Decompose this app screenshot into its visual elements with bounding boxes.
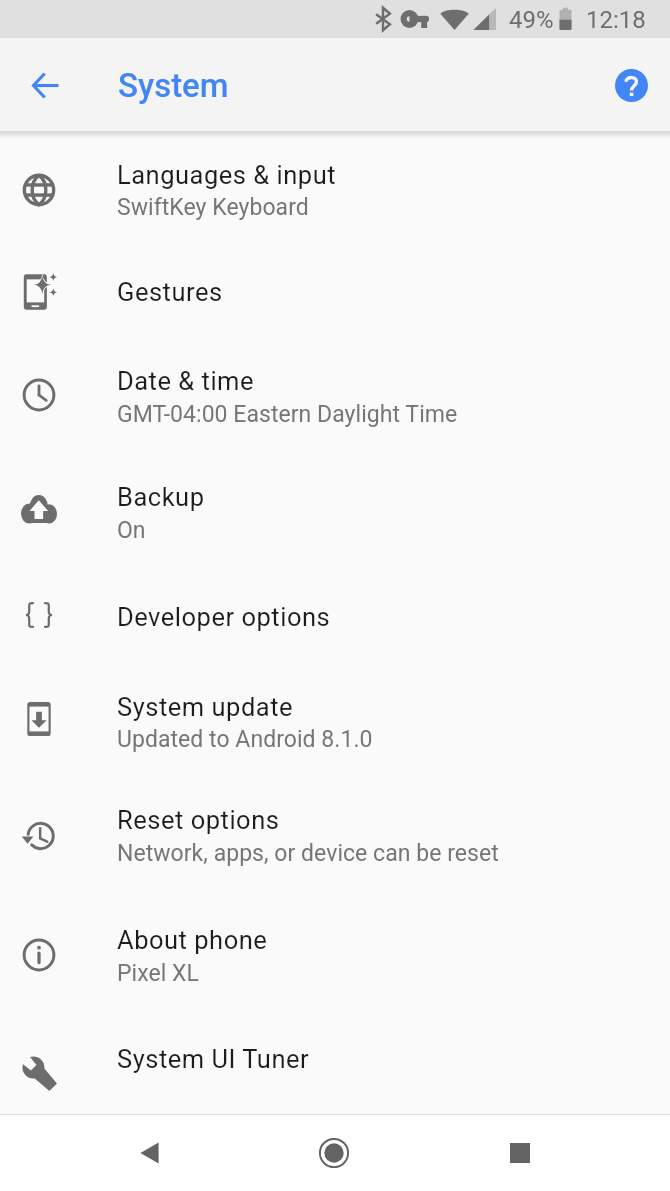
staticText: On — [117, 517, 146, 544]
button[interactable]: Recent apps — [490, 1123, 550, 1183]
button[interactable]: Reset options — [0, 779, 670, 895]
button[interactable]: System update — [0, 667, 670, 779]
staticText: System update — [117, 692, 294, 722]
staticText: System — [118, 66, 229, 105]
staticText: Developer options — [117, 602, 331, 632]
button[interactable]: Navigate up — [21, 61, 69, 109]
staticText: Reset options — [117, 805, 280, 835]
staticText: SwiftKey Keyboard — [117, 194, 309, 221]
staticText: Pixel XL — [117, 960, 199, 987]
staticText: 12:18 — [586, 6, 646, 34]
staticText: Languages & input — [117, 160, 337, 190]
staticText: Backup — [117, 482, 205, 512]
button[interactable]: System UI Tuner — [0, 1012, 670, 1114]
staticText: 49% — [509, 6, 554, 34]
staticText: About phone — [117, 925, 268, 955]
button[interactable]: Gestures — [0, 243, 670, 342]
button[interactable]: Developer options — [0, 568, 670, 667]
staticText: Updated to Android 8.1.0 — [117, 726, 373, 753]
button[interactable]: Languages & input — [0, 131, 670, 243]
button[interactable]: Help — [609, 63, 653, 107]
staticText: System UI Tuner — [117, 1044, 310, 1074]
button[interactable]: Home — [304, 1123, 364, 1183]
staticText: Date & time — [117, 366, 255, 396]
button[interactable]: About phone — [0, 895, 670, 1012]
staticText: GMT-04:00 Eastern Daylight Time — [117, 401, 458, 428]
button[interactable]: Backup — [0, 454, 670, 568]
button[interactable]: Back — [119, 1123, 179, 1183]
button[interactable]: Date & time — [0, 342, 670, 454]
staticText: Gestures — [117, 277, 223, 307]
staticText: Network, apps, or device can be reset — [117, 840, 499, 867]
